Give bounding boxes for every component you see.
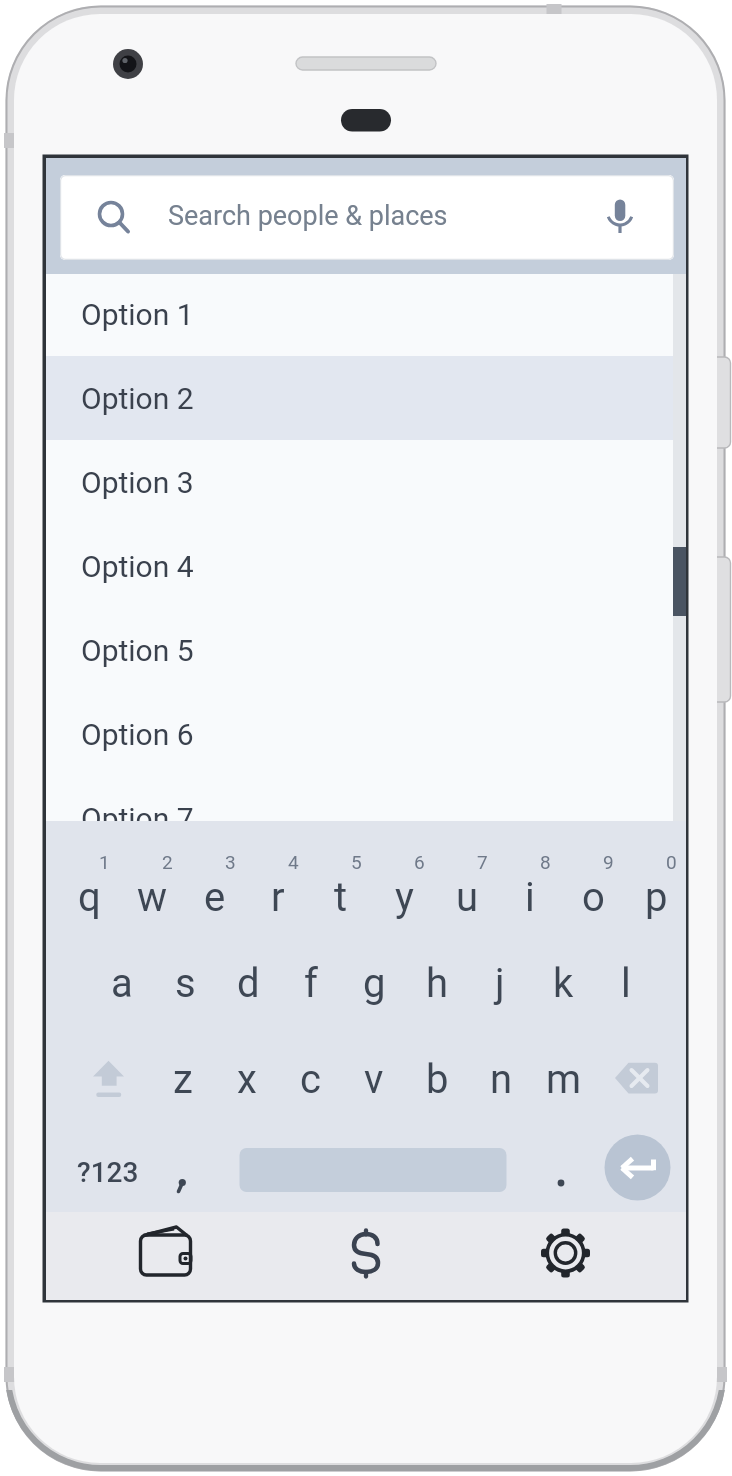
button[interactable]: t: [310, 854, 372, 940]
button[interactable]: w: [121, 854, 183, 940]
staticText: g: [363, 960, 386, 1007]
staticText: Option 7: [81, 801, 194, 836]
staticText: z: [173, 1056, 193, 1103]
staticText: Search people & places: [168, 200, 448, 232]
staticText: 9: [603, 851, 614, 873]
button[interactable]: p: [625, 854, 687, 940]
button[interactable]: e: [184, 854, 246, 940]
staticText: r: [271, 874, 285, 921]
button[interactable]: Option 5: [46, 608, 686, 692]
button[interactable]: v: [343, 1036, 405, 1122]
button[interactable]: [540, 1162, 582, 1204]
staticText: i: [525, 874, 535, 921]
staticText: y: [395, 874, 414, 921]
button[interactable]: f: [280, 940, 342, 1026]
staticText: n: [490, 1056, 513, 1103]
button[interactable]: Option 6: [46, 692, 686, 776]
staticText: v: [364, 1056, 384, 1103]
staticText: j: [495, 960, 505, 1007]
staticText: x: [237, 1056, 257, 1103]
button[interactable]: ?123: [63, 1142, 153, 1202]
button[interactable]: k: [532, 940, 594, 1026]
staticText: w: [137, 874, 168, 921]
button[interactable]: Option 3: [46, 440, 686, 524]
button[interactable]: [535, 1226, 595, 1286]
button[interactable]: [605, 1135, 671, 1201]
staticText: e: [204, 874, 226, 921]
button[interactable]: [617, 1056, 662, 1101]
button[interactable]: [135, 1226, 195, 1286]
button[interactable]: [336, 1226, 396, 1286]
staticText: q: [78, 874, 101, 921]
staticText: 3: [225, 851, 236, 873]
staticText: ?123: [77, 1156, 139, 1189]
staticText: 2: [162, 851, 173, 873]
staticText: 4: [288, 851, 299, 873]
staticText: Option 2: [81, 381, 194, 416]
button[interactable]: y: [373, 854, 435, 940]
staticText: u: [456, 874, 479, 921]
button[interactable]: [162, 1151, 204, 1193]
button[interactable]: [86, 1053, 131, 1098]
staticText: a: [111, 960, 133, 1007]
staticText: Option 6: [81, 717, 194, 752]
button[interactable]: u: [436, 854, 498, 940]
button[interactable]: c: [279, 1036, 341, 1122]
staticText: Option 4: [81, 549, 194, 584]
staticText: 7: [477, 851, 488, 873]
button[interactable]: Option 4: [46, 524, 686, 608]
staticText: h: [426, 960, 449, 1007]
button[interactable]: i: [499, 854, 561, 940]
button[interactable]: z: [152, 1036, 214, 1122]
staticText: Option 5: [81, 633, 194, 668]
staticText: s: [175, 960, 196, 1007]
staticText: o: [582, 874, 605, 921]
button[interactable]: Option 7: [46, 776, 686, 860]
staticText: t: [334, 874, 348, 921]
staticText: 8: [540, 851, 551, 873]
button[interactable]: x: [216, 1036, 278, 1122]
staticText: c: [300, 1056, 321, 1103]
staticText: f: [304, 960, 318, 1007]
staticText: b: [426, 1056, 449, 1103]
button[interactable]: a: [91, 940, 153, 1026]
staticText: 1: [99, 851, 110, 873]
button[interactable]: n: [470, 1036, 532, 1122]
staticText: 6: [414, 851, 425, 873]
staticText: m: [546, 1056, 582, 1103]
staticText: Option 1: [81, 297, 194, 332]
button[interactable]: Option 2: [46, 356, 686, 440]
button[interactable]: l: [595, 940, 657, 1026]
button[interactable]: b: [406, 1036, 468, 1122]
staticText: p: [645, 874, 668, 921]
button[interactable]: m: [533, 1036, 595, 1122]
staticText: Option 3: [81, 465, 194, 500]
button[interactable]: d: [217, 940, 279, 1026]
button[interactable]: Option 1: [46, 272, 686, 356]
button[interactable]: q: [58, 854, 120, 940]
button[interactable]: g: [343, 940, 405, 1026]
staticText: 0: [666, 851, 677, 873]
staticText: k: [553, 960, 574, 1007]
staticText: l: [621, 960, 631, 1007]
staticText: d: [237, 960, 260, 1007]
button[interactable]: s: [154, 940, 216, 1026]
staticText: 5: [351, 851, 362, 873]
button[interactable]: r: [247, 854, 309, 940]
button[interactable]: h: [406, 940, 468, 1026]
button[interactable]: Search people & places: [60, 175, 674, 260]
button[interactable]: j: [469, 940, 531, 1026]
button[interactable]: o: [562, 854, 624, 940]
